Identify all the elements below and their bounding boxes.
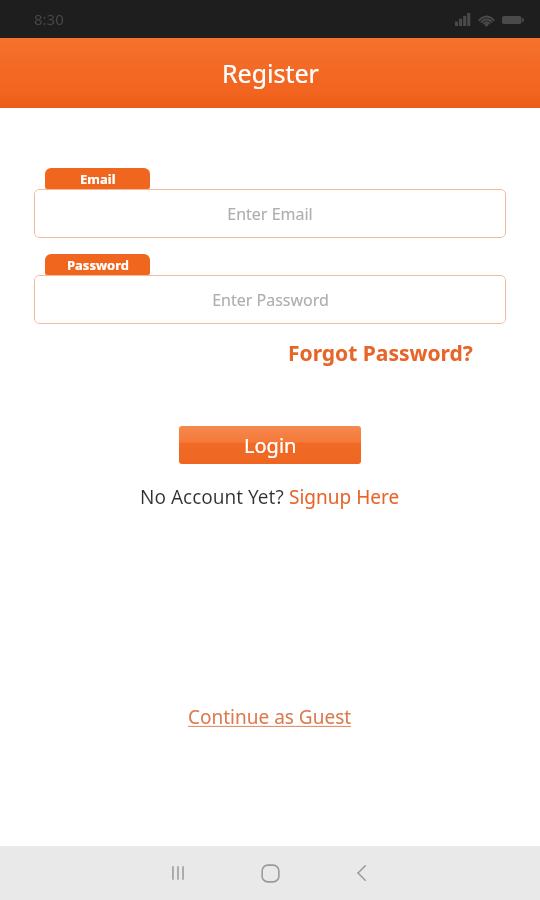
button[interactable]: Forgot Password? (288, 336, 473, 371)
button[interactable]: Login (179, 426, 361, 464)
button[interactable]: Enter Email (34, 189, 506, 238)
staticText: Password (67, 256, 129, 274)
staticText: Login (244, 432, 297, 459)
staticText: No Account Yet? (140, 484, 289, 510)
button[interactable]: Signup Here (289, 484, 400, 510)
staticText: Enter Password (212, 289, 329, 311)
staticText: Register (222, 56, 319, 90)
staticText: Email (80, 170, 116, 188)
button[interactable]: Enter Password (34, 275, 506, 324)
button[interactable]: Recent apps (142, 846, 214, 900)
staticText: Enter Email (227, 203, 313, 225)
staticText: 8:30 (34, 9, 64, 29)
button[interactable]: Continue as Guest (184, 700, 356, 734)
button[interactable]: Home (234, 846, 306, 900)
button[interactable]: Back (326, 846, 398, 900)
